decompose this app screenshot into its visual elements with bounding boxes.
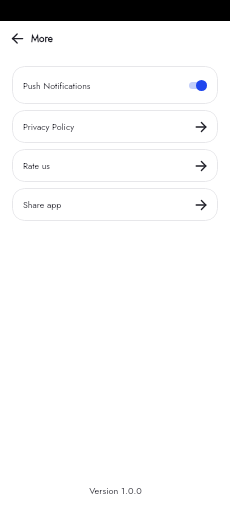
- button[interactable]: Rate us: [12, 149, 218, 182]
- staticText: Share app: [23, 198, 62, 211]
- staticText: Privacy Policy: [23, 120, 75, 133]
- staticText: Rate us: [23, 159, 50, 172]
- button[interactable]: Push Notifications: [12, 66, 218, 104]
- button[interactable]: Back: [6, 27, 28, 49]
- button[interactable]: Privacy Policy: [12, 110, 218, 143]
- button[interactable]: Share app: [12, 188, 218, 221]
- staticText: Version 1.0.0: [89, 484, 142, 497]
- staticText: Push Notifications: [23, 79, 91, 92]
- staticText: More: [31, 31, 53, 45]
